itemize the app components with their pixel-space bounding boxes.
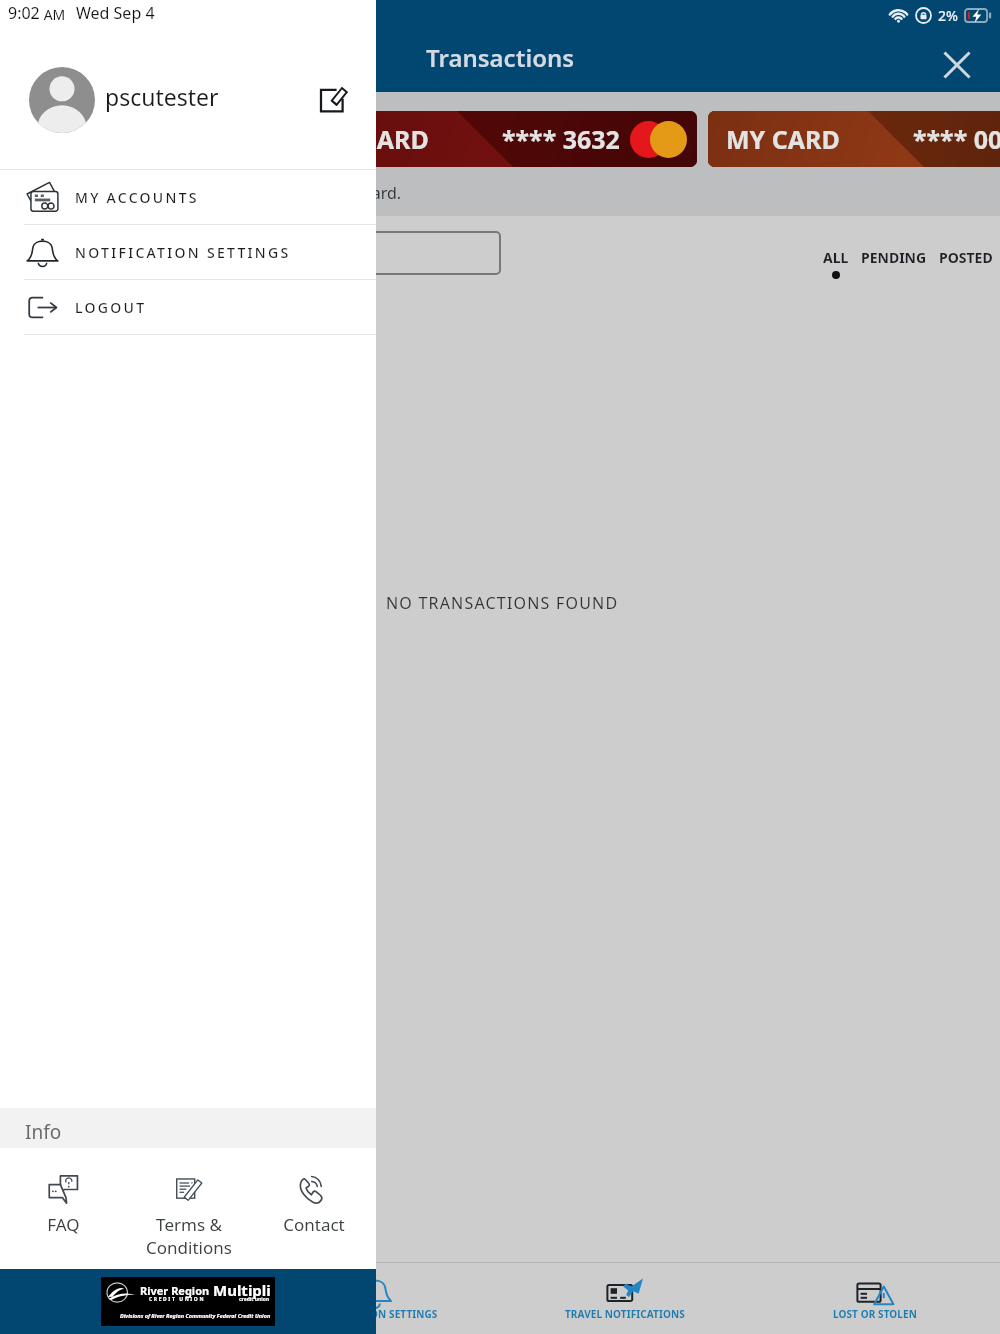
button[interactable]: MY ACCOUNTS [0, 170, 376, 224]
staticText: Info [25, 1119, 62, 1145]
button[interactable]: Search transactions [244, 231, 501, 275]
staticText: PENDING [861, 248, 927, 267]
button[interactable]: Edit profile [318, 85, 348, 115]
button[interactable]: Terms & Conditions [126, 1174, 251, 1259]
staticText: MY ACCOUNTS [75, 188, 199, 207]
staticText: Contact [283, 1213, 345, 1236]
staticText: Transactions [426, 41, 575, 74]
button[interactable]: ALL [823, 248, 849, 279]
staticText: NOTIFICATION SETTINGS [75, 243, 291, 262]
button[interactable]: Contact [251, 1174, 376, 1236]
staticText: CARD CONTROLS [83, 1307, 168, 1321]
staticText: MY CARD [315, 122, 429, 156]
staticText: CREDIT UNION [149, 1296, 206, 1303]
staticText: TRAVEL NOTIFICATIONS [565, 1307, 685, 1321]
staticText: FAQ [47, 1213, 80, 1236]
staticText: ALL [823, 248, 849, 267]
staticText: LOGOUT [75, 298, 147, 317]
staticText: pscutester [105, 81, 219, 112]
button[interactable]: PENDING [861, 248, 927, 267]
staticText: Wed Sep 4 [76, 2, 155, 24]
button[interactable]: MY CARD [297, 111, 697, 167]
staticText: LOST OR STOLEN [833, 1307, 917, 1321]
button[interactable]: River Region Credit Union [101, 1277, 275, 1326]
button[interactable]: pscutester [0, 30, 376, 169]
staticText: River Region [140, 1283, 210, 1298]
button[interactable]: TRAVEL NOTIFICATIONS [500, 1262, 750, 1334]
staticText: **** 3632 [502, 122, 620, 156]
staticText: POSTED [939, 248, 993, 267]
button[interactable]: NOTIFICATION SETTINGS [250, 1262, 500, 1334]
button[interactable]: LOST OR STOLEN [750, 1262, 1000, 1334]
button[interactable]: NOTIFICATION SETTINGS [0, 225, 376, 279]
staticText: 2% [938, 6, 958, 25]
button[interactable]: MY CARD [708, 111, 1000, 167]
staticText: Multipli [213, 1280, 271, 1300]
button[interactable]: FAQ [0, 1174, 126, 1236]
button[interactable]: POSTED [939, 248, 993, 267]
staticText: Terms & Conditions [146, 1213, 232, 1259]
staticText: AM [40, 5, 66, 24]
button[interactable]: LOGOUT [0, 280, 376, 334]
staticText: **** 0000 [913, 122, 1000, 156]
staticText: MY CARD [726, 122, 840, 156]
staticText: You have no transactions for this card. [114, 182, 402, 204]
staticText: credit union [239, 1296, 270, 1303]
staticText: 9:02 [8, 2, 40, 24]
button[interactable]: Close [938, 46, 976, 84]
staticText: NO TRANSACTIONS FOUND [386, 592, 619, 614]
button[interactable]: CARD CONTROLS [0, 1262, 250, 1334]
staticText: NOTIFICATION SETTINGS [312, 1307, 438, 1321]
staticText: Divisions of River Region Community Fede… [120, 1312, 271, 1319]
